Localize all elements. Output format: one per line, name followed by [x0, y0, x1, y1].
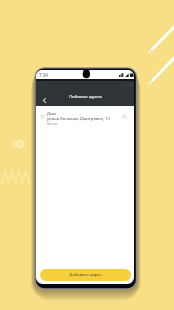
- button[interactable]: Дом: [36, 106, 134, 128]
- staticText: 7:34: [39, 72, 48, 78]
- button[interactable]: Back: [38, 94, 50, 106]
- staticText: Москва: [47, 122, 58, 126]
- staticText: улица Большая Дмитровка, 13: [47, 115, 110, 121]
- staticText: Добавить адрес: [69, 272, 102, 278]
- button[interactable]: Добавить адрес: [40, 269, 131, 281]
- staticText: Дом: [47, 110, 56, 116]
- staticText: Любимые адреса: [69, 94, 102, 99]
- button[interactable]: Remove: [121, 113, 128, 120]
